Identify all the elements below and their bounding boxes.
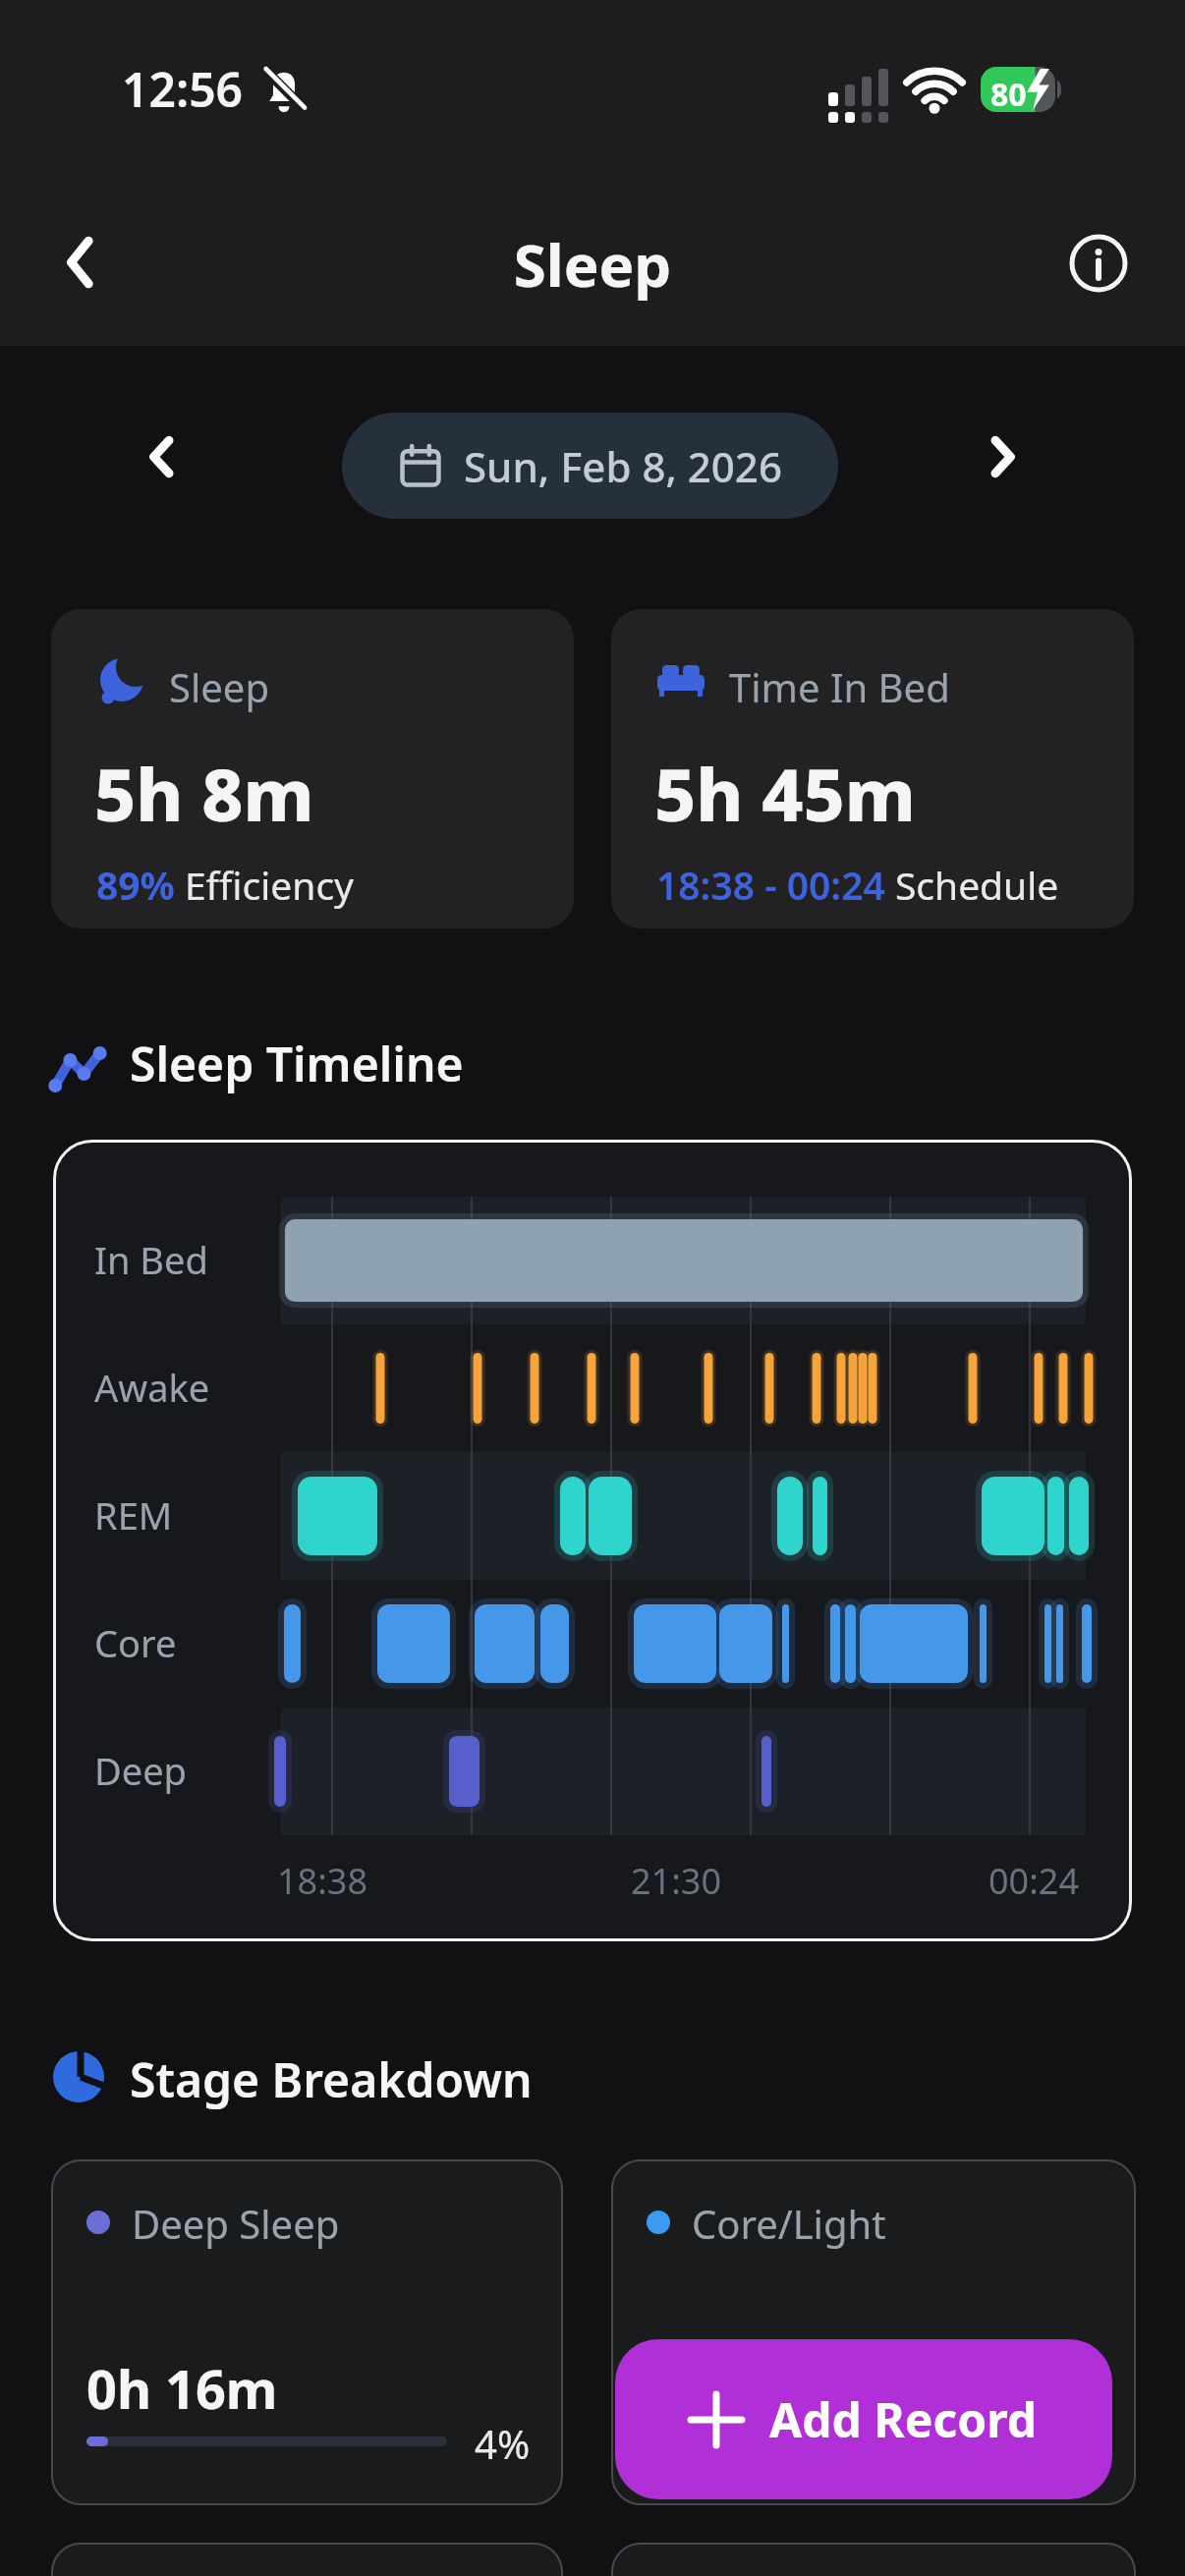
staticText: 80 (990, 73, 1027, 116)
staticText: 21:30 (631, 1857, 722, 1905)
staticText: Add Record (769, 2387, 1038, 2451)
staticText: 4% (475, 2417, 531, 2470)
staticText: 18:38 - 00:24 Schedule (656, 859, 1059, 911)
button[interactable] (1069, 234, 1128, 293)
staticText: Sleep (0, 224, 1185, 305)
button[interactable]: Sleep (51, 609, 574, 928)
staticText: Core (94, 1617, 177, 1668)
staticText: 5h 8m (94, 745, 314, 842)
staticText: In Bed (94, 1234, 208, 1285)
staticText: 12:56 (122, 57, 244, 121)
staticText: 89% Efficiency (96, 859, 355, 911)
staticText: Sleep Timeline (130, 1032, 464, 1095)
staticText: 5h 45m (654, 745, 916, 842)
button[interactable] (47, 224, 114, 301)
staticText: Deep (94, 1745, 187, 1796)
staticText: Awake (94, 1362, 210, 1413)
staticText: Sun, Feb 8, 2026 (464, 438, 782, 494)
staticText: Time In Bed (729, 660, 950, 713)
button[interactable] (128, 422, 197, 491)
staticText: 0h 16m (86, 2352, 278, 2425)
staticText: REM (94, 1489, 173, 1540)
button[interactable] (968, 422, 1037, 491)
button[interactable]: Time In Bed (611, 609, 1134, 928)
button[interactable]: Add Record (615, 2339, 1112, 2499)
button[interactable]: Sun, Feb 8, 2026 (342, 413, 838, 519)
staticText: Core/Light (692, 2197, 886, 2250)
staticText: 18:38 (277, 1857, 368, 1905)
staticText: Sleep (169, 660, 269, 713)
staticText: Deep Sleep (132, 2197, 340, 2250)
staticText: 00:24 (988, 1857, 1080, 1905)
staticText: Stage Breakdown (130, 2047, 533, 2111)
